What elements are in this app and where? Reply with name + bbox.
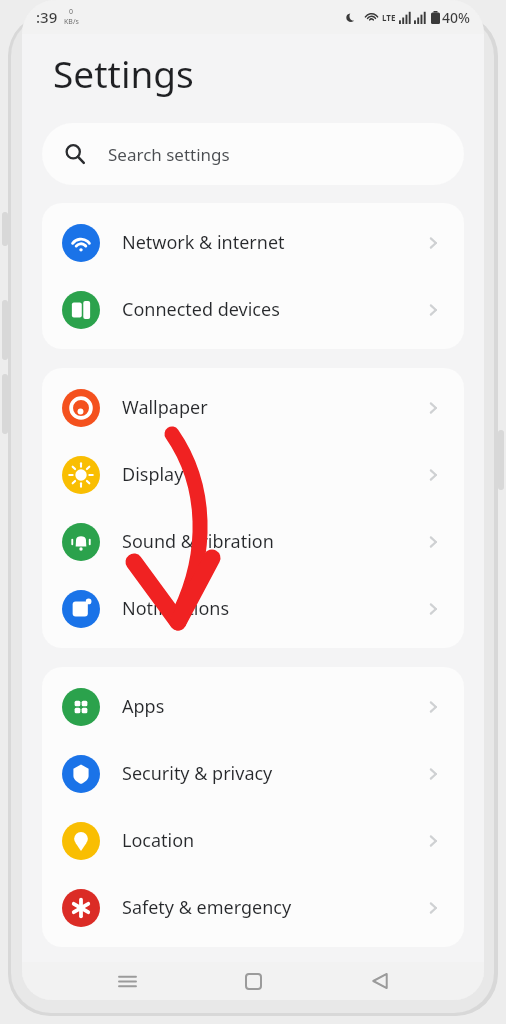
staticText: Settings xyxy=(53,48,194,98)
staticText: KB/s xyxy=(64,17,79,27)
button[interactable]: Wallpaper xyxy=(42,374,464,441)
button[interactable]: Safety & emergency xyxy=(42,874,464,941)
button[interactable]: Connected devices xyxy=(42,276,464,343)
button[interactable]: Sound & vibration xyxy=(42,508,464,575)
button[interactable]: Location xyxy=(42,807,464,874)
button[interactable]: Home xyxy=(231,962,275,1000)
button[interactable]: Notifications xyxy=(42,575,464,642)
staticText: Network & internet xyxy=(122,230,285,255)
staticText: 40% xyxy=(442,8,470,27)
button[interactable]: Search settings xyxy=(42,123,464,185)
staticText: Apps xyxy=(122,694,165,719)
staticText: Location xyxy=(122,828,195,853)
button[interactable]: Recent apps xyxy=(105,962,149,1000)
button[interactable]: Display xyxy=(42,441,464,508)
staticText: Safety & emergency xyxy=(122,895,292,920)
staticText: Display xyxy=(122,462,184,487)
button[interactable]: Security & privacy xyxy=(42,740,464,807)
staticText: Sound & vibration xyxy=(122,529,274,554)
button[interactable]: Back xyxy=(358,962,402,1000)
staticText: Search settings xyxy=(108,143,230,166)
staticText: LTE xyxy=(382,12,396,23)
staticText: Connected devices xyxy=(122,297,280,322)
staticText: :39 xyxy=(36,7,58,27)
staticText: Notifications xyxy=(122,596,230,621)
staticText: Wallpaper xyxy=(122,395,208,420)
staticText: Security & privacy xyxy=(122,761,273,786)
staticText: 0 xyxy=(69,7,74,17)
button[interactable]: Network & internet xyxy=(42,209,464,276)
button[interactable]: Apps xyxy=(42,673,464,740)
